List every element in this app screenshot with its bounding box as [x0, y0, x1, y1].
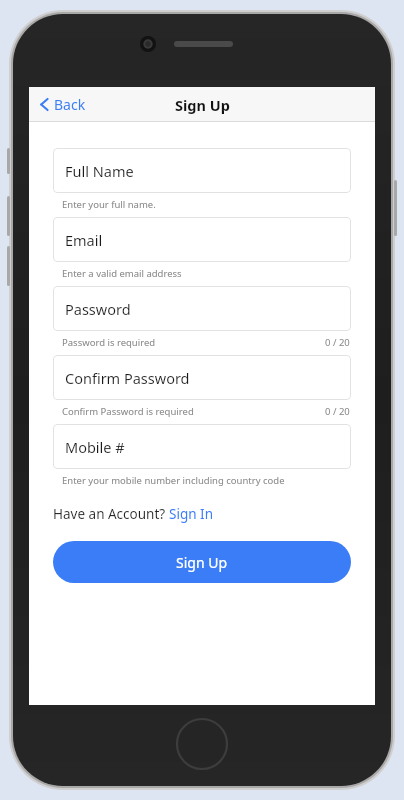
staticText: Full Name	[65, 161, 134, 181]
staticText: Sign In	[169, 505, 213, 523]
button[interactable]: Have an Account?	[53, 503, 213, 525]
staticText: Password is required	[62, 336, 156, 349]
button[interactable]: Sign Up	[53, 541, 351, 583]
staticText: Mobile #	[65, 437, 125, 457]
staticText: Password	[65, 299, 131, 319]
button[interactable]: Mobile #	[53, 424, 351, 469]
staticText: Have an Account?	[53, 505, 169, 523]
staticText: Enter your mobile number including count…	[62, 474, 285, 487]
staticText: Sign Up	[175, 95, 230, 115]
button[interactable]: Email	[53, 217, 351, 262]
staticText: Confirm Password	[65, 368, 190, 388]
button[interactable]: Confirm Password	[53, 355, 351, 400]
staticText: 0 / 20	[325, 405, 350, 418]
button[interactable]: Password	[53, 286, 351, 331]
staticText: 0 / 20	[325, 336, 350, 349]
staticText: Enter your full name.	[62, 198, 156, 211]
button[interactable]: Full Name	[53, 148, 351, 193]
staticText: Back	[54, 95, 86, 114]
button[interactable]: Back	[35, 91, 90, 118]
staticText: Sign Up	[176, 553, 228, 572]
staticText: Confirm Password is required	[62, 405, 194, 418]
staticText: Email	[65, 230, 103, 250]
staticText: Enter a valid email address	[62, 267, 182, 280]
